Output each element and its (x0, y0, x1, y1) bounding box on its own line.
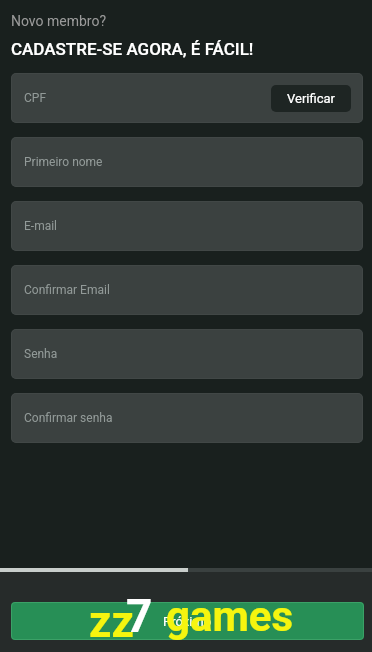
button[interactable]: Confirmar Email (11, 265, 363, 315)
staticText: Senha (24, 347, 58, 361)
staticText: Primeiro nome (24, 155, 103, 169)
button[interactable]: Primeiro nome (11, 137, 363, 187)
button[interactable]: Verificar (271, 85, 351, 112)
staticText: Confirmar senha (24, 411, 113, 425)
staticText: CADASTRE-SE AGORA, É FÁCIL! (11, 39, 254, 59)
staticText: games (166, 592, 294, 641)
staticText: Verificar (287, 91, 335, 106)
other: zz7 games (0, 0, 372, 652)
staticText: E-mail (24, 219, 58, 233)
staticText: zz (89, 596, 134, 648)
staticText: CPF (24, 91, 47, 105)
button[interactable]: Próximo (11, 602, 364, 640)
staticText: Novo membro? (11, 13, 107, 29)
staticText: 7 (126, 589, 153, 643)
button[interactable]: Senha (11, 329, 363, 379)
button[interactable]: CPF (11, 73, 363, 123)
staticText: Próximo (163, 614, 212, 629)
button[interactable]: E-mail (11, 201, 363, 251)
staticText: Confirmar Email (24, 283, 110, 297)
button[interactable]: Confirmar senha (11, 393, 363, 443)
